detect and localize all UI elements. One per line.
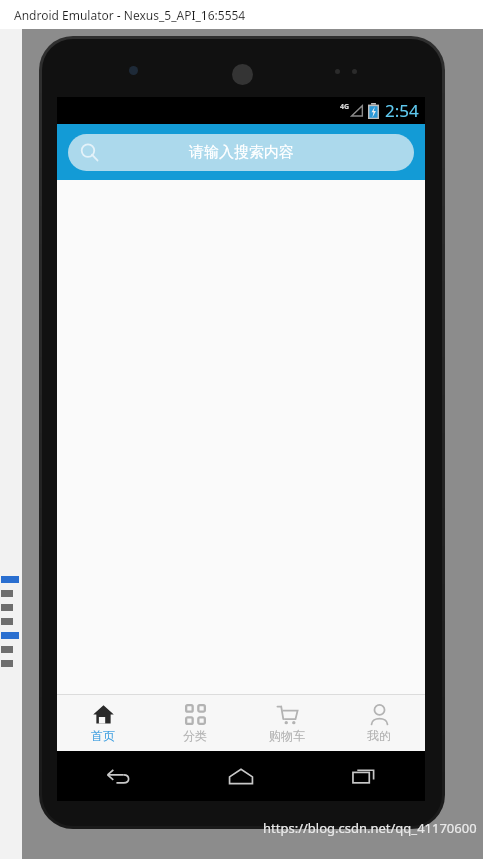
staticText: 首页 bbox=[91, 728, 115, 743]
button[interactable]: Back bbox=[57, 751, 179, 801]
button[interactable]: 分类 bbox=[149, 695, 241, 751]
button[interactable]: Recent apps bbox=[302, 751, 425, 801]
staticText: 请输入搜索内容 bbox=[189, 143, 294, 162]
staticText: 购物车 bbox=[269, 728, 305, 743]
staticText: 我的 bbox=[367, 728, 391, 743]
staticText: https://blog.csdn.net/qq_41170600 bbox=[263, 819, 477, 837]
staticText: 分类 bbox=[183, 728, 207, 743]
button[interactable]: 购物车 bbox=[241, 695, 333, 751]
button[interactable]: Home bbox=[179, 751, 302, 801]
staticText: Android Emulator - Nexus_5_API_16:5554 bbox=[14, 7, 246, 23]
button[interactable]: 请输入搜索内容 bbox=[68, 134, 414, 171]
button[interactable]: 我的 bbox=[333, 695, 425, 751]
staticText: 2:54 bbox=[385, 99, 419, 122]
staticText: 4G bbox=[340, 102, 350, 112]
button[interactable]: 首页 bbox=[57, 695, 149, 751]
